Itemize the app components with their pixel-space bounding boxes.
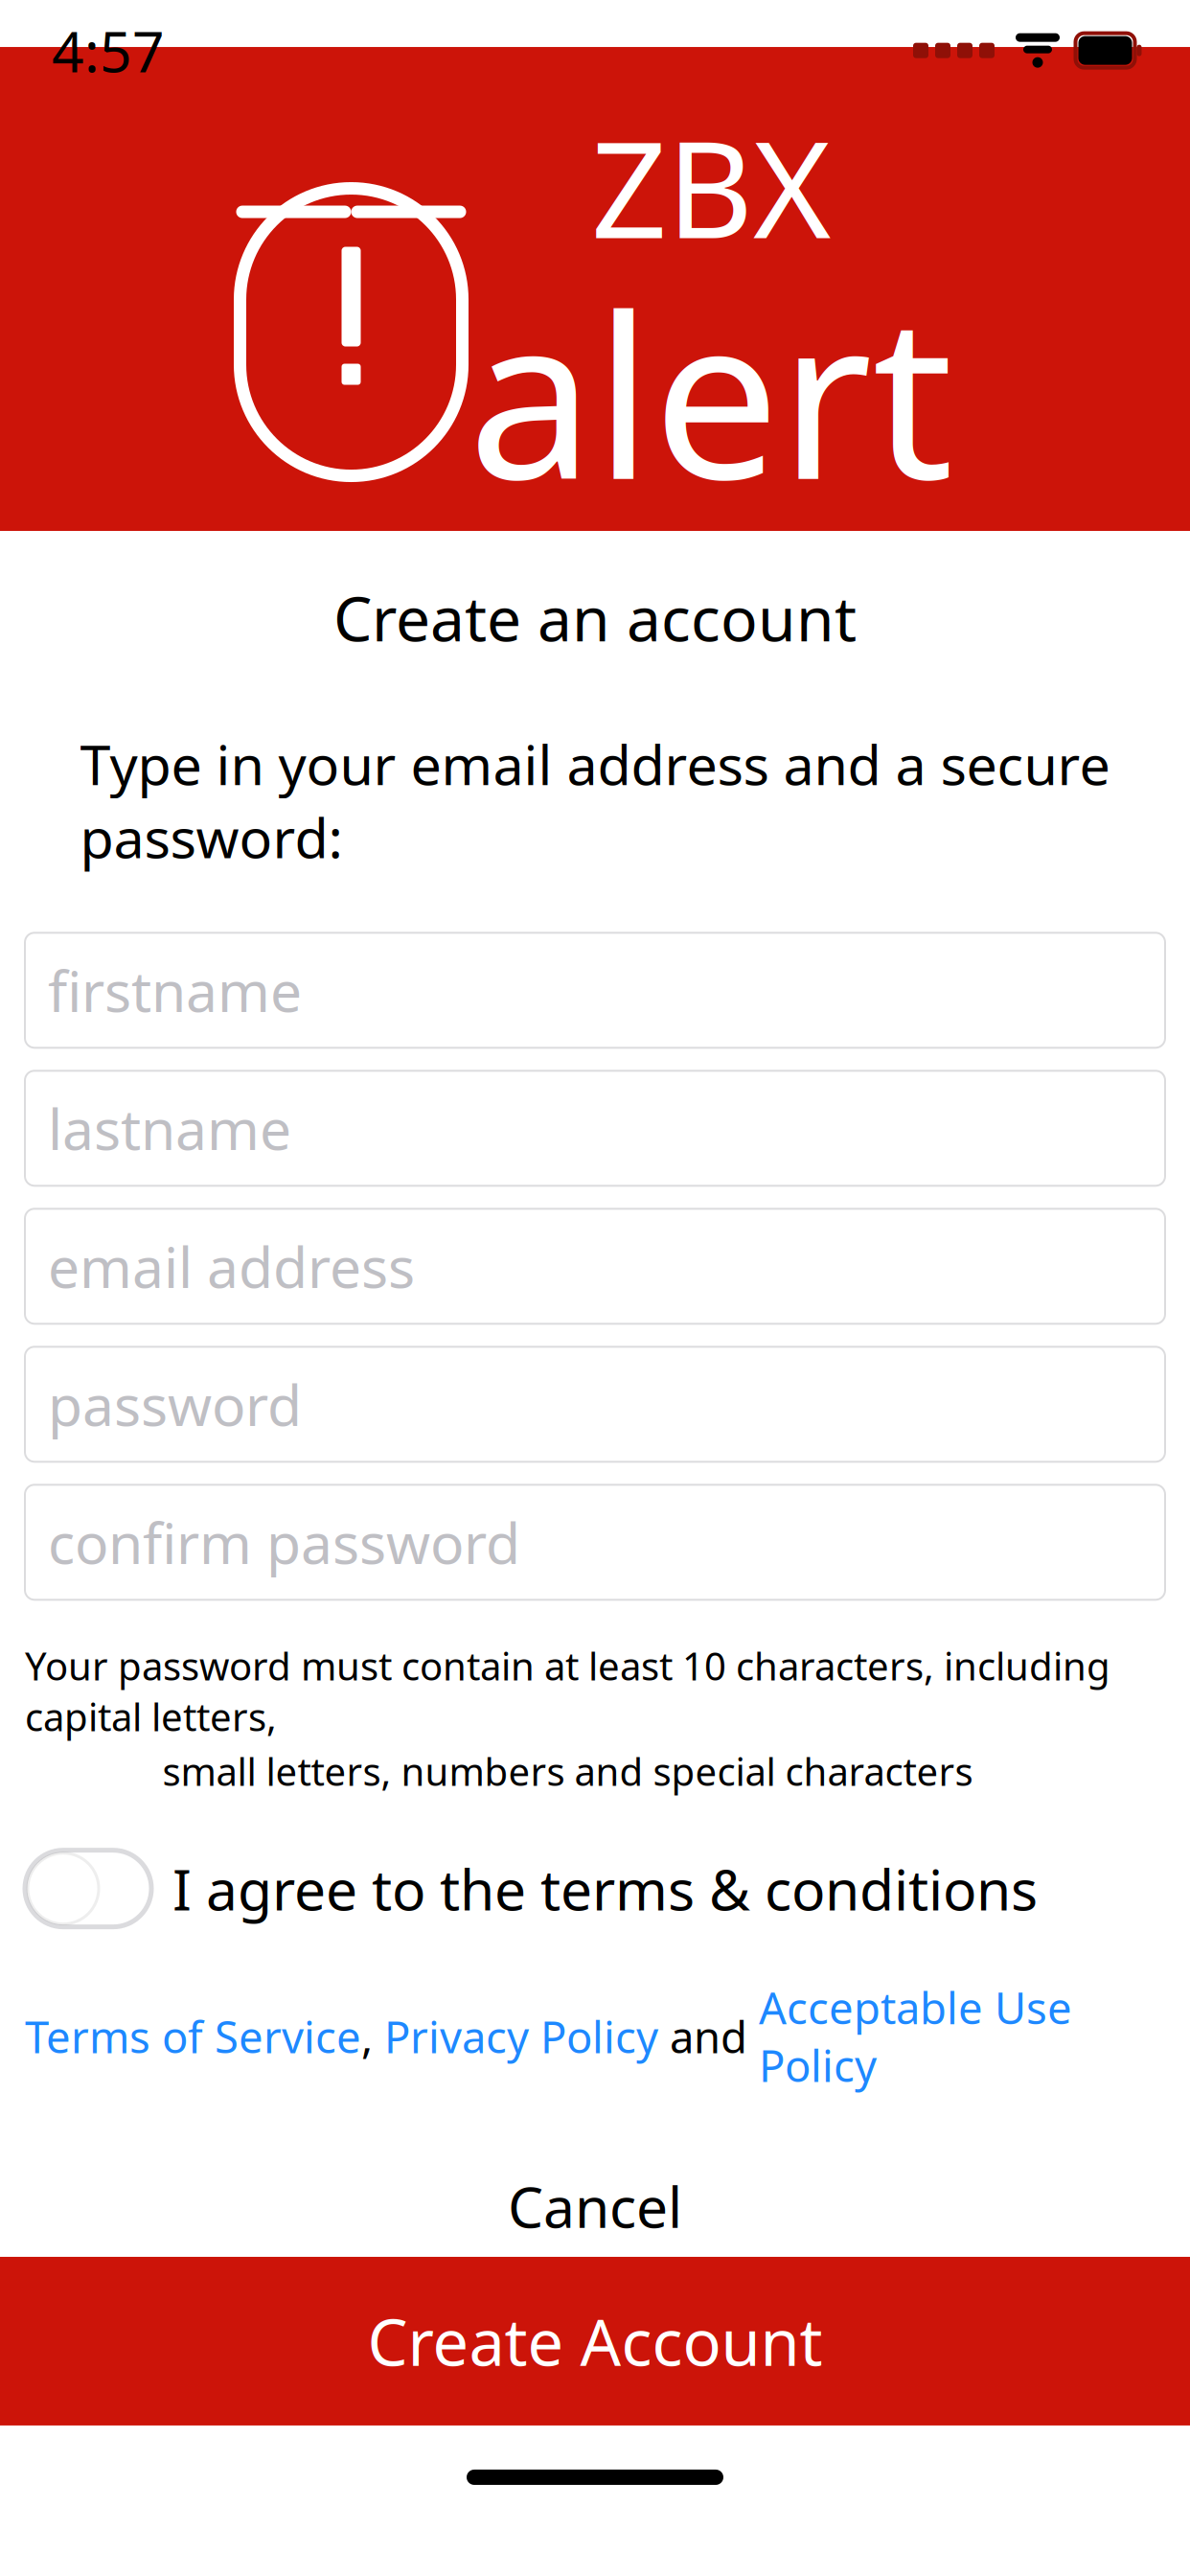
button[interactable]: Cancel bbox=[469, 2155, 721, 2257]
button[interactable]: Privacy Policy bbox=[384, 2008, 658, 2065]
staticText: Acceptable Use Policy bbox=[759, 1979, 1072, 2094]
staticText: firstname bbox=[48, 953, 302, 1028]
staticText: small letters, numbers and special chara… bbox=[162, 1746, 973, 1796]
staticText: lastname bbox=[48, 1091, 291, 1166]
staticText: 4:57 bbox=[52, 13, 165, 88]
button[interactable]: firstname bbox=[25, 933, 1165, 1048]
button[interactable]: Create Account bbox=[0, 2257, 1190, 2426]
staticText: Your password must contain at least 10 c… bbox=[25, 1640, 1110, 1742]
button[interactable]: confirm password bbox=[25, 1485, 1165, 1600]
button[interactable]: I agree to the terms & conditions bbox=[25, 1850, 1165, 1927]
staticText: I agree to the terms & conditions bbox=[172, 1851, 1038, 1926]
staticText: password bbox=[48, 1367, 302, 1442]
staticText: Terms of Service bbox=[25, 2008, 361, 2065]
staticText: confirm password bbox=[48, 1505, 520, 1580]
button[interactable]: email address bbox=[25, 1209, 1165, 1324]
staticText: ZBX bbox=[591, 98, 831, 275]
staticText: Type in your email address and a secure … bbox=[80, 727, 1110, 873]
button[interactable]: lastname bbox=[25, 1071, 1165, 1186]
staticText: Create Account bbox=[367, 2299, 823, 2384]
staticText: alert bbox=[468, 242, 954, 541]
staticText: , bbox=[361, 2008, 384, 2065]
staticText: email address bbox=[48, 1229, 415, 1304]
staticText: Privacy Policy bbox=[384, 2008, 658, 2065]
staticText: Create an account bbox=[333, 577, 857, 658]
button[interactable]: Terms of Service bbox=[25, 2008, 361, 2065]
button[interactable]: password bbox=[25, 1347, 1165, 1462]
staticText: Cancel bbox=[508, 2169, 682, 2243]
button[interactable]: Acceptable Use Policy bbox=[759, 1979, 1072, 2094]
staticText: and bbox=[658, 2008, 759, 2065]
